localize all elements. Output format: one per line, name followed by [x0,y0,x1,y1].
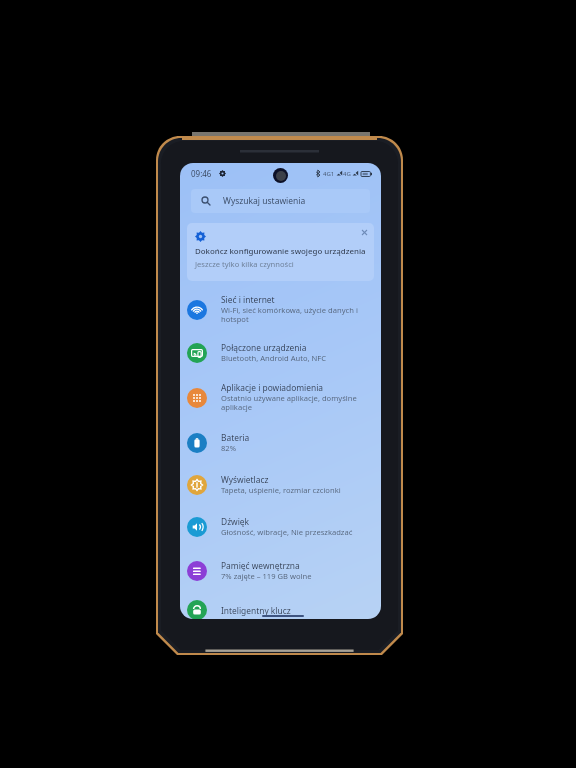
staticText: Ostatnio używane aplikacje, domyślne apl… [221,393,371,413]
button[interactable]: Wyszukaj ustawienia [191,189,370,213]
staticText: Głośność, wibracje, Nie przeszkadzać [221,527,353,537]
staticText: 82% [221,443,236,453]
staticText: Sieć i internet [221,294,275,305]
button[interactable]: Inteligentny klucz [180,593,381,619]
staticText: Dźwięk [221,516,250,527]
staticText: Wi-Fi, sieć komórkowa, użycie danych i h… [221,305,371,325]
staticText: 4G [343,170,351,178]
staticText: 7% zajęte – 119 GB wolne [221,571,312,581]
button[interactable]: Zamknij [187,223,374,281]
button[interactable]: Dźwięk [180,510,381,542]
staticText: Połączone urządzenia [221,342,307,353]
button[interactable]: Połączone urządzenia [180,336,381,368]
staticText: Inteligentny klucz [221,605,291,616]
button[interactable]: Wyświetlacz [180,468,381,500]
button[interactable]: Zamknij [358,226,371,239]
staticText: 4G1 [323,170,335,178]
staticText: Bluetooth, Android Auto, NFC [221,353,327,363]
staticText: Wyszukaj ustawienia [223,195,306,207]
button[interactable]: Pamięć wewnętrzna [180,554,381,586]
staticText: Jeszcze tylko kilka czynności [195,259,294,269]
button[interactable]: Bateria [180,426,381,458]
staticText: Dokończ konfigurowanie swojego urządzeni… [195,246,366,257]
staticText: 09:46 [191,168,212,179]
staticText: Wyświetlacz [221,474,269,485]
staticText: Tapeta, uśpienie, rozmiar czcionki [221,485,341,495]
button[interactable]: Sieć i internet [180,293,381,325]
staticText: Pamięć wewnętrzna [221,560,300,571]
staticText: Bateria [221,432,250,443]
staticText: Aplikacje i powiadomienia [221,382,324,393]
button[interactable]: Aplikacje i powiadomienia [180,381,381,413]
